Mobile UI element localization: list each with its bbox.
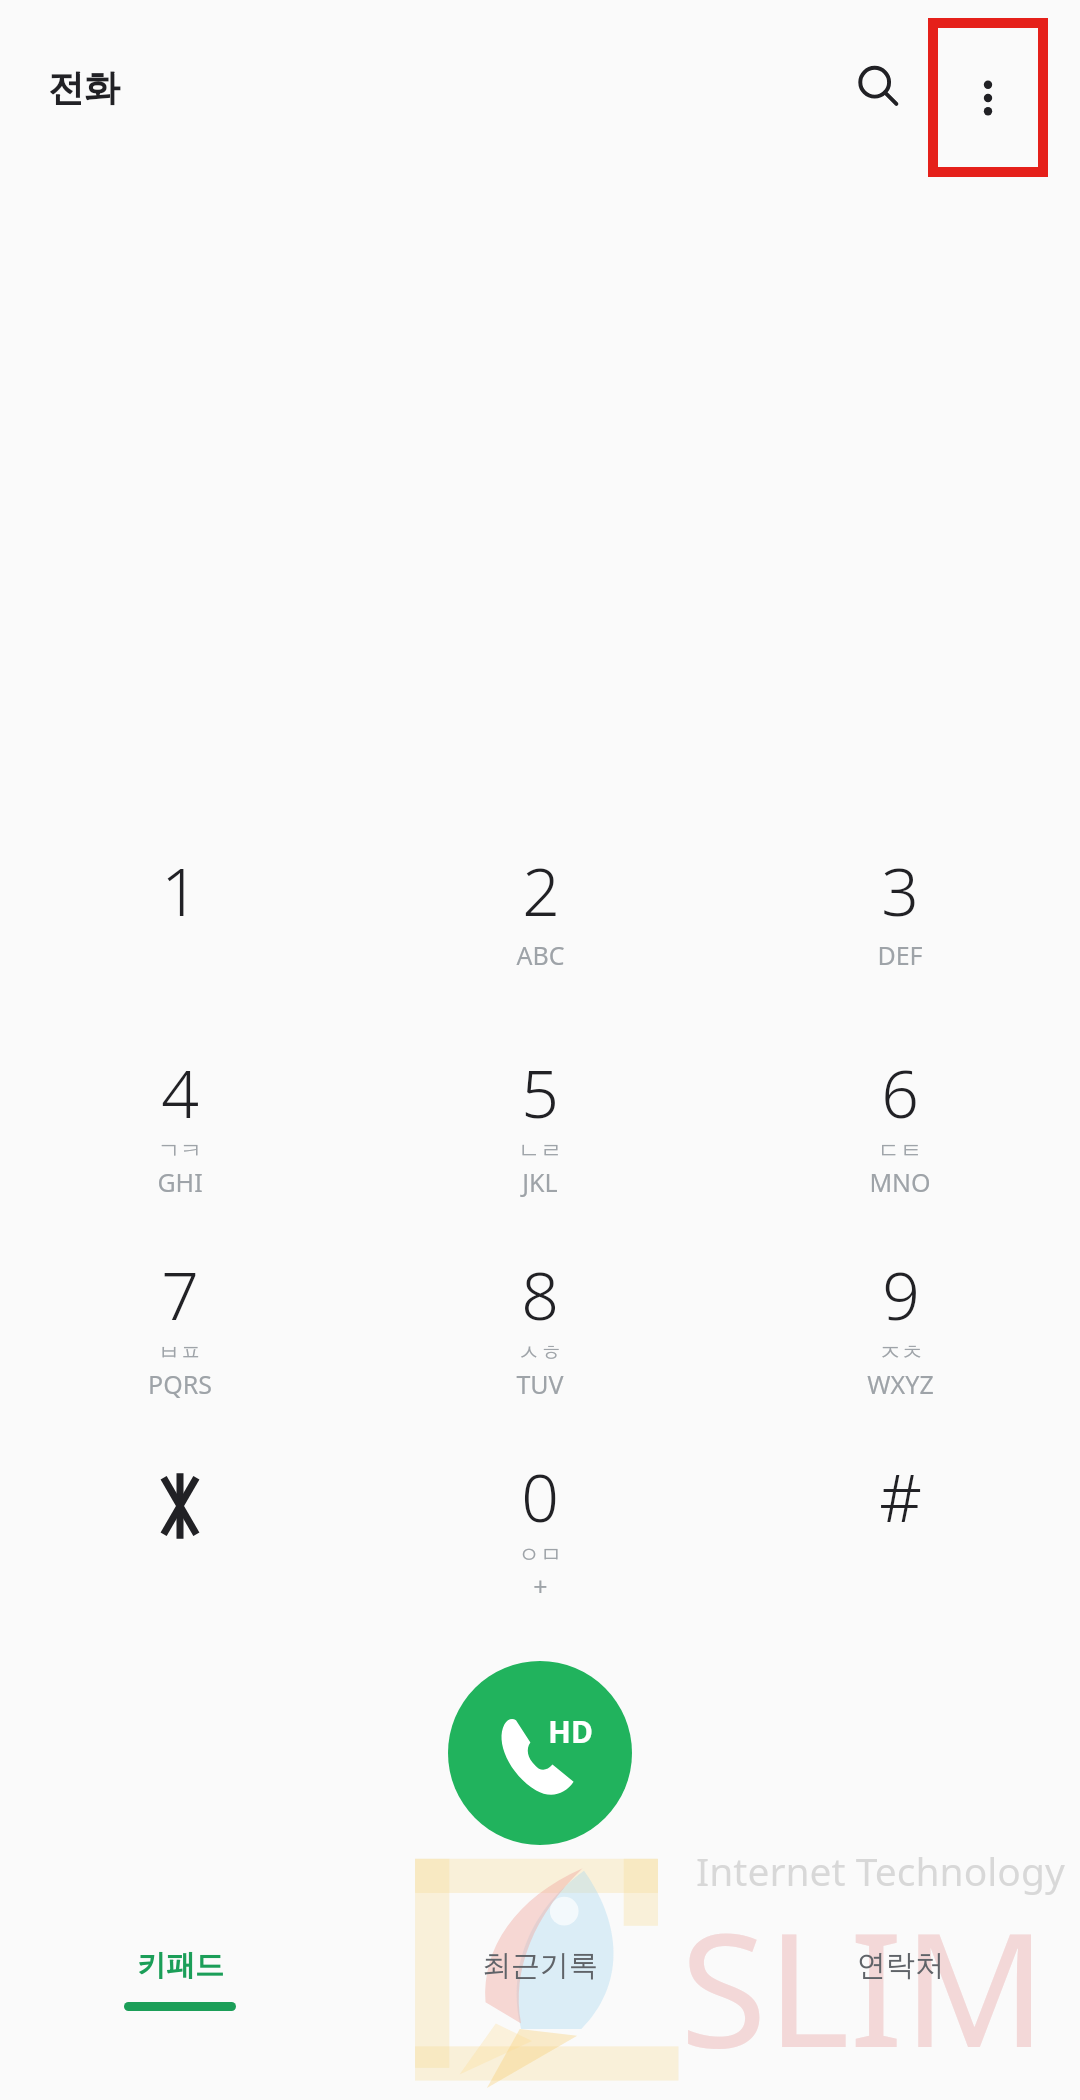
button[interactable]: 6 [720, 1047, 1080, 1249]
button[interactable]: # [720, 1451, 1080, 1653]
staticText: WXYZ [867, 1367, 934, 1401]
button[interactable]: 0 [360, 1451, 720, 1653]
button[interactable]: 7 [0, 1249, 360, 1451]
button[interactable]: 9 [720, 1249, 1080, 1451]
staticText: MNO [869, 1165, 931, 1199]
button[interactable]: Search [831, 39, 927, 135]
button[interactable]: 8 [360, 1249, 720, 1451]
staticText: 8 [521, 1249, 559, 1339]
staticText: 7 [161, 1249, 199, 1339]
button[interactable]: 연락처 [720, 1933, 1080, 2073]
button[interactable]: Call [448, 1661, 632, 1845]
staticText: HD [548, 1711, 593, 1752]
staticText: 연락처 [857, 1947, 944, 1984]
staticText: 1 [161, 845, 199, 935]
staticText: 5 [521, 1047, 559, 1137]
button[interactable]: 3 [720, 845, 1080, 1047]
staticText: ㅂㅍ [158, 1339, 202, 1367]
staticText: 최근기록 [482, 1947, 598, 1984]
staticText: ㅈㅊ [879, 1339, 923, 1367]
button[interactable]: 2 [360, 845, 720, 1047]
staticText: ㅅㅎ [518, 1339, 562, 1367]
staticText: 전화 [48, 65, 120, 110]
staticText: + [533, 1569, 548, 1603]
button[interactable]: 키패드 [0, 1933, 360, 2073]
staticText: DEF [877, 938, 923, 972]
staticText: ㄷㅌ [878, 1137, 922, 1165]
staticText: 4 [161, 1047, 199, 1137]
button[interactable]: 1 [0, 845, 360, 1047]
staticText: 2 [522, 845, 560, 935]
staticText: 3 [881, 845, 919, 935]
staticText: JKL [522, 1165, 558, 1199]
staticText: SLIM [680, 1878, 1047, 2093]
button[interactable] [0, 1451, 360, 1653]
staticText: Internet Technology [696, 1844, 1065, 1897]
staticText: 키패드 [137, 1947, 224, 1984]
staticText: ABC [516, 938, 565, 972]
button[interactable]: 최근기록 [360, 1933, 720, 2073]
staticText: TUV [516, 1367, 564, 1401]
staticText: 0 [521, 1451, 559, 1541]
staticText: ㄴㄹ [518, 1137, 562, 1165]
staticText: # [879, 1451, 922, 1541]
button[interactable]: 4 [0, 1047, 360, 1249]
staticText: 9 [882, 1249, 920, 1339]
staticText: GHI [157, 1165, 203, 1199]
staticText: PQRS [148, 1367, 212, 1401]
staticText: 6 [881, 1047, 919, 1137]
staticText: ㅇㅁ [518, 1541, 562, 1569]
button[interactable]: More options [948, 58, 1028, 138]
staticText: ㄱㅋ [158, 1137, 202, 1165]
button[interactable]: 5 [360, 1047, 720, 1249]
